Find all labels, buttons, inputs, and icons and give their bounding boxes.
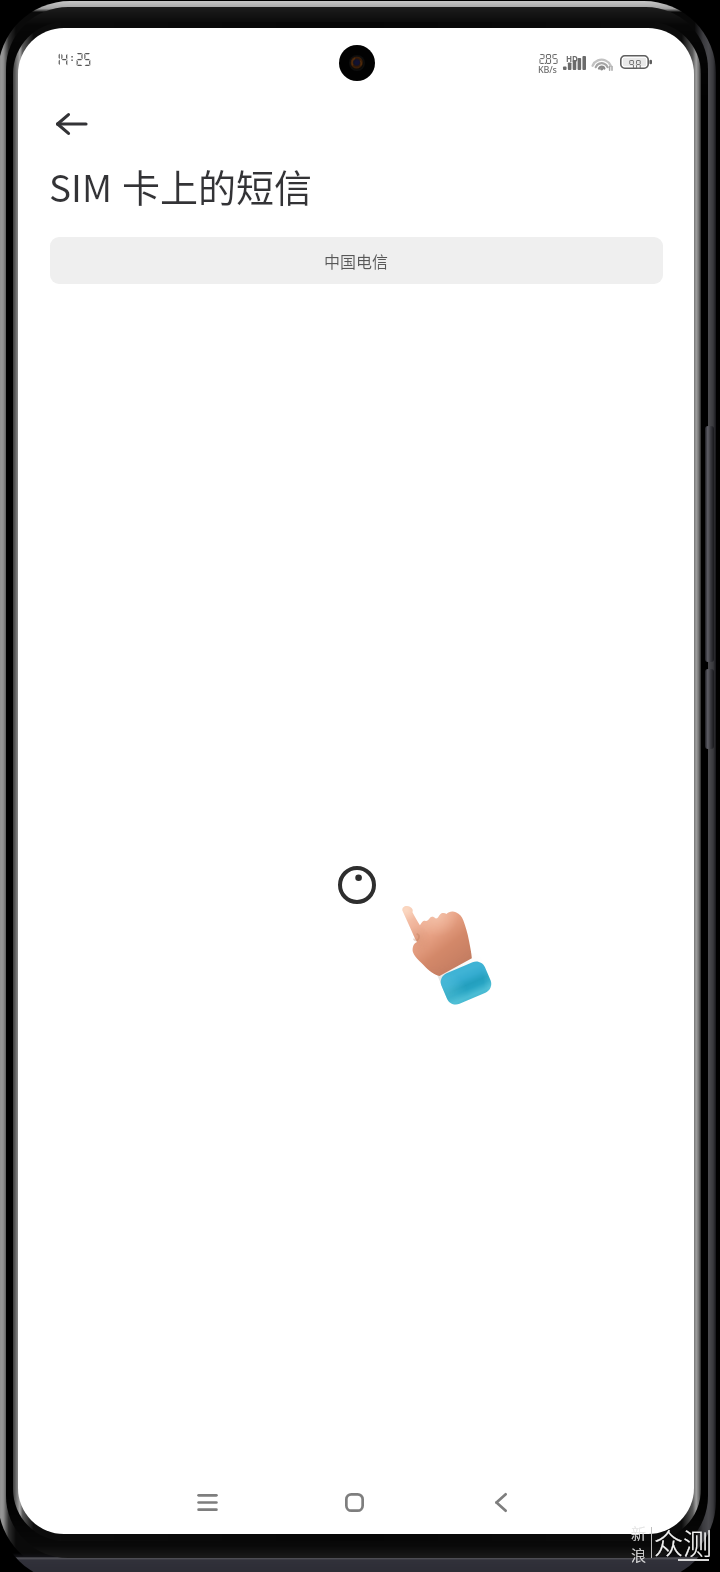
staticText: 98 bbox=[628, 58, 642, 70]
staticText: 中国电信 bbox=[324, 249, 389, 272]
button[interactable]: Recent apps bbox=[179, 1474, 235, 1530]
staticText: 众测 bbox=[654, 1521, 713, 1563]
staticText: 2.85 bbox=[538, 52, 558, 65]
staticText: 14:25 bbox=[52, 51, 91, 66]
staticText: SIM bbox=[49, 159, 112, 213]
staticText: 浪 bbox=[631, 1544, 647, 1566]
button[interactable]: Back bbox=[473, 1474, 529, 1530]
staticText: HD bbox=[566, 53, 578, 64]
staticText: 新 bbox=[631, 1522, 647, 1544]
button[interactable]: Back bbox=[43, 95, 100, 152]
staticText: 卡上的短信 bbox=[122, 158, 313, 213]
button[interactable]: Home bbox=[326, 1474, 382, 1530]
button[interactable]: 中国电信 bbox=[50, 237, 663, 284]
staticText: KB/s bbox=[538, 63, 557, 75]
